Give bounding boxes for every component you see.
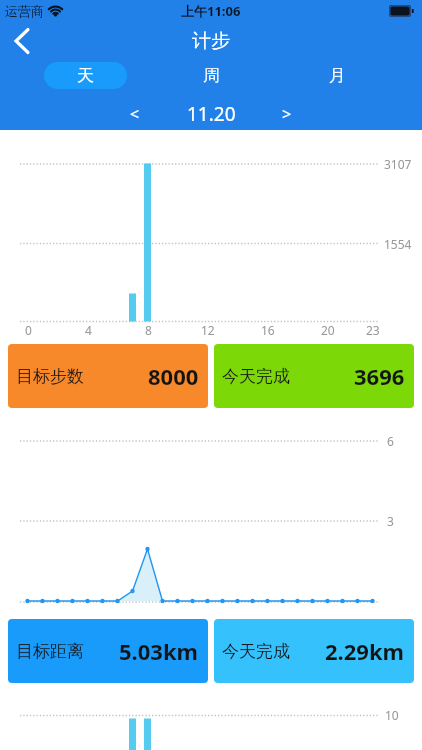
staticText: > (282, 103, 292, 125)
staticText: 1554 (384, 236, 412, 252)
staticText: 天 (77, 65, 94, 86)
staticText: 月 (329, 65, 346, 86)
staticText: 计步 (192, 29, 230, 53)
staticText: 3107 (384, 156, 412, 172)
staticText: 16 (261, 322, 275, 338)
staticText: 4 (85, 322, 92, 338)
staticText: 运营商 (5, 3, 44, 19)
staticText: 3 (387, 513, 394, 529)
staticText: 今天完成 (222, 641, 290, 662)
staticText: < (130, 103, 140, 125)
button[interactable]: 今天完成 (214, 344, 414, 408)
staticText: 0 (25, 322, 32, 338)
button[interactable]: > (267, 100, 307, 128)
button[interactable]: 周 (171, 62, 251, 89)
staticText: 10 (385, 707, 399, 723)
staticText: 上午11:06 (181, 2, 241, 20)
button[interactable]: < (115, 100, 155, 128)
staticText: 12 (201, 322, 215, 338)
staticText: 5.03km (119, 636, 199, 666)
staticText: 目标距离 (16, 641, 84, 662)
button[interactable]: 目标步数 (8, 344, 208, 408)
staticText: 2.29km (325, 636, 405, 666)
staticText: 3696 (354, 361, 405, 391)
staticText: 20 (321, 322, 335, 338)
button[interactable] (0, 22, 44, 60)
button[interactable]: 目标距离 (8, 619, 208, 683)
staticText: 8000 (148, 361, 199, 391)
staticText: 11.20 (187, 101, 236, 127)
button[interactable]: 月 (297, 62, 377, 89)
staticText: 23 (366, 322, 380, 338)
button[interactable]: 今天完成 (214, 619, 414, 683)
button[interactable]: 天 (44, 62, 127, 89)
staticText: 目标步数 (16, 366, 84, 387)
staticText: 今天完成 (222, 366, 290, 387)
staticText: 8 (145, 322, 152, 338)
staticText: 周 (203, 65, 220, 86)
staticText: 6 (387, 433, 394, 449)
